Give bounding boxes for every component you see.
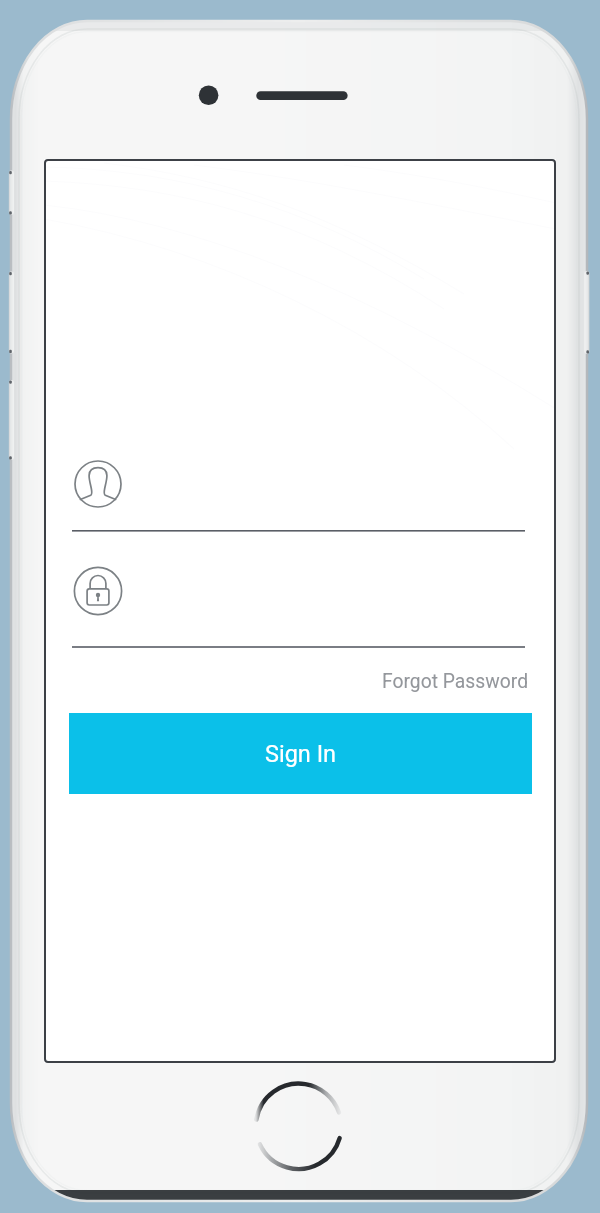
staticText: Forgot Password xyxy=(382,670,529,693)
button[interactable]: Username field xyxy=(68,455,529,537)
button[interactable]: Forgot Password xyxy=(376,665,535,698)
staticText: Sign In xyxy=(265,740,337,768)
button[interactable]: Sign In xyxy=(69,713,532,794)
button[interactable]: Password field xyxy=(68,562,529,654)
